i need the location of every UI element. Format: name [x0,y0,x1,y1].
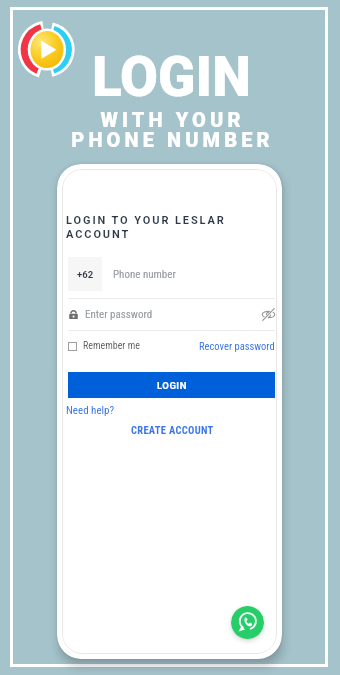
staticText: LOGIN [92,45,251,109]
staticText: WITH YOUR PHONE NUMBER [71,108,274,152]
button[interactable]: LOGIN [68,372,275,398]
staticText: +62 [77,269,94,280]
button[interactable]: +62 [68,257,275,291]
staticText: Phone number [113,268,176,281]
button[interactable]: Enter password [68,298,275,330]
staticText: Recover password [199,340,275,352]
button[interactable]: Recover password [199,338,275,354]
staticText: Enter password [85,308,153,321]
button[interactable]: Remember me [68,338,134,354]
button[interactable]: Chat on WhatsApp [231,606,264,639]
staticText: Remember me [83,340,140,352]
button[interactable]: CREATE ACCOUNT [131,424,214,436]
staticText: LOGIN [157,380,187,391]
button[interactable]: Need help? [66,404,115,417]
staticText: LOGIN TO YOUR LESLAR ACCOUNT [66,214,226,241]
